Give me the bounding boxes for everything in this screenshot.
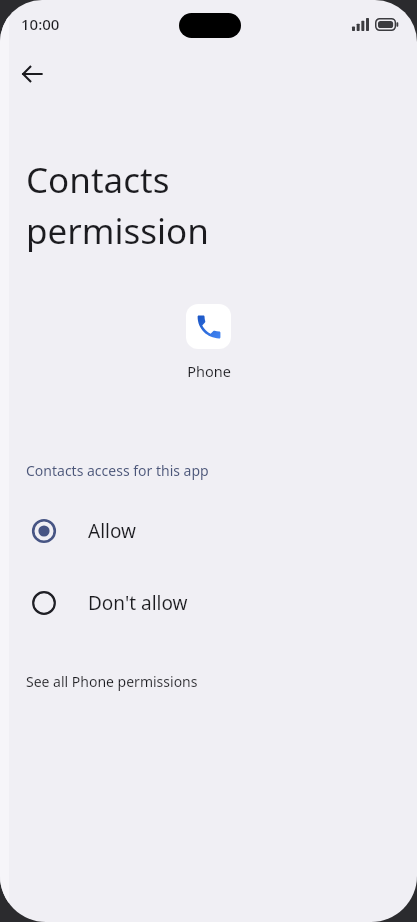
staticText: Contacts permission [26, 156, 209, 254]
staticText: Contacts access for this app [26, 461, 209, 480]
staticText: See all Phone permissions [26, 672, 198, 691]
staticText: Allow [88, 518, 136, 544]
button[interactable]: Back [8, 50, 56, 98]
button[interactable]: Don't allow [0, 579, 417, 627]
button[interactable]: Allow [0, 507, 417, 555]
staticText: 10:00 [21, 14, 60, 34]
staticText: Phone [187, 361, 231, 381]
staticText: Don't allow [88, 590, 188, 616]
button[interactable]: See all Phone permissions [0, 668, 417, 695]
